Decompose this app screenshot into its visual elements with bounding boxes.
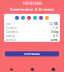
button[interactable]: Size — [4, 22, 60, 26]
staticText: Rating — [6, 34, 15, 38]
staticText: ● — [30, 67, 33, 71]
button[interactable]: Recents — [43, 67, 64, 71]
staticText: Today — [51, 30, 58, 34]
staticText: Size — [6, 22, 11, 26]
button[interactable]: Rating — [4, 34, 60, 38]
staticText: Author — [6, 38, 16, 42]
staticText: Acme — [51, 38, 58, 42]
button[interactable]: Author — [4, 38, 60, 42]
staticText: 1.4 — [53, 26, 58, 30]
button[interactable]: Version — [4, 26, 60, 30]
staticText: DOWNLOAD — [24, 52, 40, 56]
button[interactable]: DOWNLOAD — [5, 51, 59, 56]
staticText: Version — [6, 26, 17, 30]
button[interactable]: Updated — [4, 30, 60, 34]
staticText: Updated — [6, 30, 18, 34]
button[interactable]: Back — [0, 67, 21, 71]
staticText: THE PACKAGE — [22, 2, 41, 5]
staticText: 4.5 — [53, 34, 58, 38]
button[interactable]: Home — [21, 67, 43, 71]
staticText: ■ — [51, 67, 55, 71]
staticText: Downloader & Browser — [9, 6, 54, 12]
staticText: 12 MB — [49, 22, 58, 26]
staticText: ◀ — [9, 67, 12, 71]
